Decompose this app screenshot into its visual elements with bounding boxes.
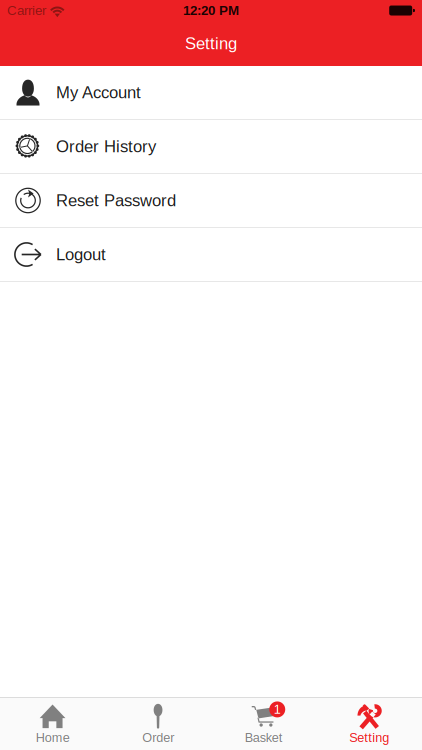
button[interactable]: Home	[0, 697, 105, 750]
button[interactable]: Reset Password	[0, 174, 422, 228]
staticText: Order History	[56, 137, 156, 156]
staticText: Setting	[349, 730, 389, 745]
staticText: Logout	[56, 245, 106, 264]
button[interactable]: Logout	[0, 228, 422, 282]
button[interactable]: 1	[211, 697, 316, 750]
staticText: 1	[274, 702, 281, 716]
staticText: Basket	[245, 730, 283, 745]
staticText: Setting	[185, 34, 237, 53]
staticText: Order	[142, 730, 174, 745]
button[interactable]: My Account	[0, 66, 422, 120]
staticText: Carrier	[7, 3, 46, 18]
button[interactable]: Order	[105, 697, 211, 750]
button[interactable]: Setting	[316, 697, 422, 750]
staticText: Reset Password	[56, 191, 176, 210]
staticText: My Account	[56, 83, 141, 102]
staticText: 12:20 PM	[183, 3, 239, 18]
staticText: Home	[36, 730, 70, 745]
button[interactable]: Order History	[0, 120, 422, 174]
